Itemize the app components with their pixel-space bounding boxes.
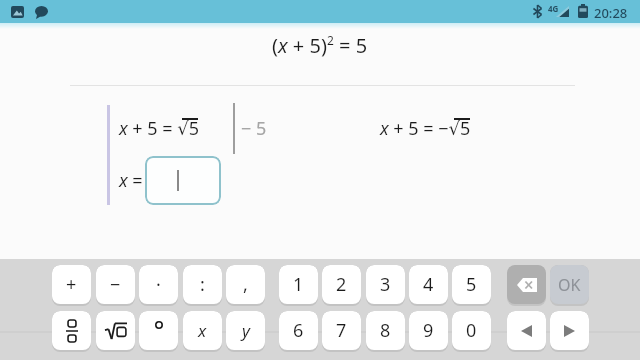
button[interactable]: , xyxy=(226,265,265,306)
button[interactable] xyxy=(507,265,546,306)
staticText: 4 xyxy=(423,272,434,297)
staticText: − 5 xyxy=(241,116,267,141)
staticText: 5 xyxy=(466,272,477,297)
staticText: (x + 5)2 = 5 xyxy=(272,32,368,59)
staticText: 9 xyxy=(423,318,434,343)
button[interactable]: − xyxy=(96,265,135,306)
button[interactable]: OK xyxy=(550,265,589,306)
button[interactable]: x xyxy=(183,311,222,352)
staticText: 20:28 xyxy=(594,4,628,22)
staticText: x + 5 = √5 xyxy=(119,116,200,141)
staticText: 0 xyxy=(466,318,477,343)
button[interactable] xyxy=(52,311,91,352)
button[interactable]: : xyxy=(183,265,222,306)
button[interactable] xyxy=(507,311,546,352)
staticText: 2 xyxy=(336,272,347,297)
staticText: : xyxy=(200,272,205,297)
staticText: − xyxy=(110,272,121,297)
staticText: 4G xyxy=(548,3,559,14)
button[interactable]: 8 xyxy=(366,311,405,352)
staticText: y xyxy=(242,319,250,342)
button[interactable]: 2 xyxy=(322,265,361,306)
button[interactable]: 1 xyxy=(279,265,318,306)
button[interactable]: 9 xyxy=(409,311,448,352)
staticText: , xyxy=(243,272,248,297)
button[interactable]: y xyxy=(226,311,265,352)
button[interactable]: 4 xyxy=(409,265,448,306)
staticText: 3 xyxy=(380,272,391,297)
staticText: OK xyxy=(558,274,581,296)
staticText: x xyxy=(198,319,207,342)
staticText: 6 xyxy=(293,318,304,343)
staticText: + xyxy=(66,272,77,297)
staticText: 7 xyxy=(336,318,347,343)
button[interactable]: 7 xyxy=(322,311,361,352)
button[interactable] xyxy=(145,156,221,205)
staticText: 8 xyxy=(380,318,391,343)
button[interactable]: · xyxy=(139,265,178,306)
button[interactable]: 0 xyxy=(452,311,491,352)
staticText: · xyxy=(156,272,161,297)
button[interactable]: 5 xyxy=(452,265,491,306)
button[interactable]: 3 xyxy=(366,265,405,306)
staticText: x = xyxy=(119,168,143,193)
button[interactable] xyxy=(139,311,178,352)
button[interactable]: 6 xyxy=(279,311,318,352)
button[interactable] xyxy=(550,311,589,352)
staticText: x + 5 = −√5 xyxy=(380,116,471,141)
staticText: 1 xyxy=(293,272,304,297)
button[interactable] xyxy=(96,311,135,352)
button[interactable]: + xyxy=(52,265,91,306)
